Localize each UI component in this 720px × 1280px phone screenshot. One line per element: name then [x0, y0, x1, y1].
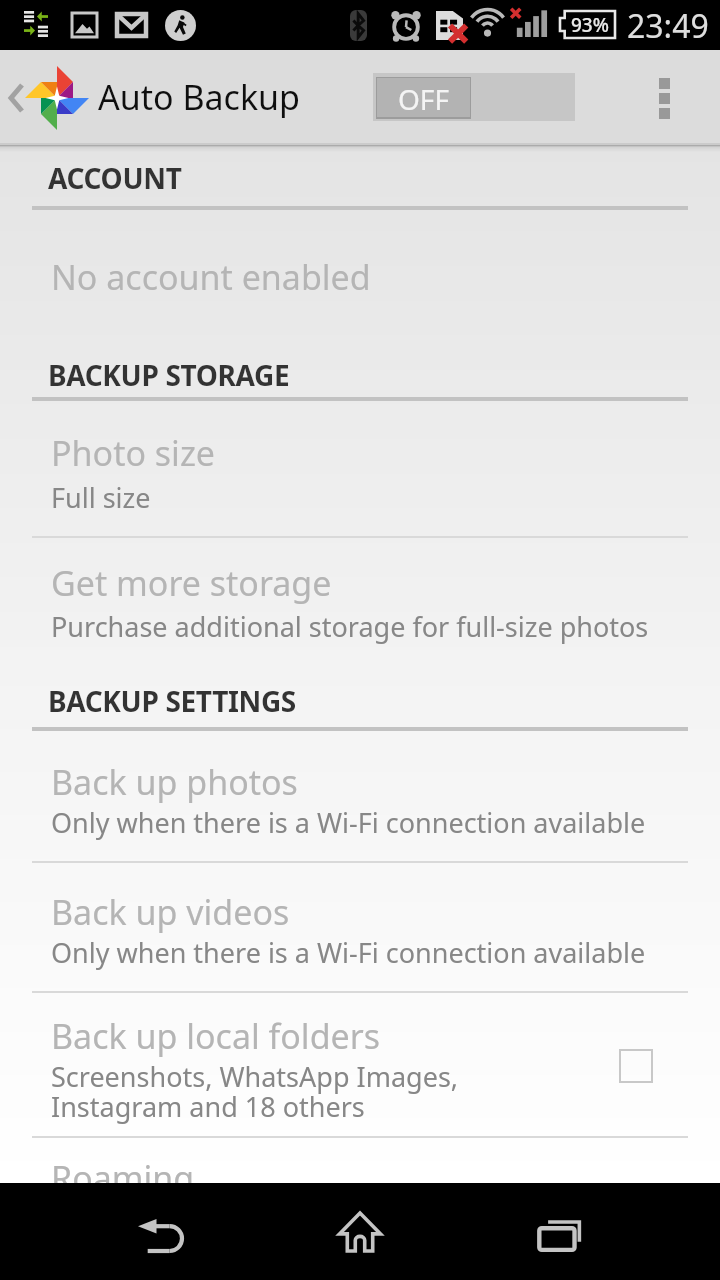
button[interactable]: No account enabled — [0, 215, 720, 320]
button[interactable]: Recent apps — [460, 1183, 660, 1280]
staticText: Full size — [51, 479, 151, 516]
staticText: Only when there is a Wi-Fi connection av… — [51, 934, 646, 971]
staticText: Back up videos — [51, 889, 290, 935]
button[interactable]: Back up photos — [0, 736, 720, 861]
staticText: Screenshots, WhatsApp Images, Instagram … — [51, 1058, 459, 1125]
button[interactable]: Back — [60, 1183, 260, 1280]
staticText: BACKUP STORAGE — [48, 356, 290, 394]
button[interactable]: More options — [634, 50, 694, 145]
staticText: Get more storage — [51, 560, 332, 606]
staticText: OFF — [398, 80, 449, 118]
button[interactable]: Get more storage — [0, 540, 720, 667]
staticText: Back up local folders — [51, 1013, 381, 1059]
staticText: No account enabled — [51, 254, 371, 300]
button[interactable]: Home — [260, 1183, 460, 1280]
button[interactable]: Navigate up — [0, 50, 96, 145]
staticText: 93% — [571, 12, 609, 38]
staticText: Only when there is a Wi-Fi connection av… — [51, 804, 646, 841]
staticText: Roaming — [51, 1155, 195, 1199]
staticText: Auto Backup — [98, 74, 300, 120]
staticText: 23:49 — [627, 4, 709, 48]
button[interactable]: Photo size — [0, 410, 720, 537]
staticText: ACCOUNT — [48, 159, 182, 197]
button[interactable]: Auto backup toggle, off — [373, 73, 575, 121]
button[interactable]: Back up local folders — [0, 994, 720, 1135]
staticText: Photo size — [51, 430, 216, 476]
staticText: Purchase additional storage for full-siz… — [51, 608, 649, 645]
staticText: BACKUP SETTINGS — [48, 682, 296, 720]
staticText: Back up photos — [51, 759, 298, 805]
button[interactable]: Roaming — [0, 1139, 720, 1183]
button[interactable]: Back up videos — [0, 864, 720, 991]
